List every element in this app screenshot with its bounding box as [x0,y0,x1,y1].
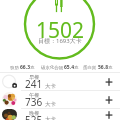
staticText: 56.8 [98,64,108,71]
button[interactable]: Add food [100,109,117,120]
staticText: 大卡 [45,116,56,120]
staticText: 大卡 [45,101,56,108]
staticText: 克 [74,65,79,71]
staticText: 午餐 [29,92,40,99]
staticText: 大卡 [45,83,56,90]
staticText: 脂肪 [10,65,19,71]
button[interactable]: Add food [100,91,117,108]
button[interactable]: Add food [100,73,117,90]
staticText: 早餐 [29,74,40,81]
staticText: 241 [25,77,43,91]
staticText: 碳水化合物 [41,65,63,71]
button[interactable]: 晚餐 [0,109,120,120]
staticText: 克 [108,65,113,71]
staticText: 晚餐 [29,110,40,117]
staticText: 525 [25,113,43,120]
staticText: 克 [30,65,35,71]
staticText: 1502 [36,16,85,45]
staticText: 目標：1693大卡 [38,37,82,45]
staticText: 65.4 [64,64,74,71]
button[interactable]: 午餐 [0,91,120,108]
staticText: 66.3 [20,64,30,71]
staticText: 蛋白質 [83,65,97,71]
button[interactable]: 早餐 [0,73,120,90]
staticText: 736 [25,95,43,109]
